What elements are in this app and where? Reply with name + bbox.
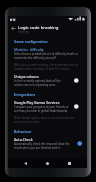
staticText: Compare your progress to your friends or…: [14, 105, 71, 112]
staticText: Settings: [18, 30, 29, 34]
staticText: Behaviour: [14, 129, 32, 134]
staticText: Google Play Games Services: [14, 100, 60, 105]
staticText: Note: Enabling this requires an active i…: [14, 116, 83, 123]
staticText: With your current settings, the estimate…: [14, 63, 83, 70]
button[interactable]: Recent apps: [65, 159, 74, 168]
staticText: In the currently opened deck all the col…: [14, 79, 71, 86]
staticText: Game configuration: [14, 39, 48, 44]
button[interactable]: Note: Enabling this requires an active i…: [8, 114, 87, 125]
button[interactable]: Back: [21, 159, 30, 168]
button[interactable]: Modules difficulty: [8, 45, 87, 61]
button[interactable]: Home: [43, 159, 52, 168]
staticText: Select from a predefined set of difficul…: [14, 52, 83, 59]
button[interactable]: Auto-Check switch: [73, 140, 83, 147]
staticText: Modules difficulty: [14, 47, 44, 52]
staticText: Logic code breaking: [18, 24, 59, 30]
staticText: Auto-Check: [14, 137, 33, 142]
button[interactable]: Navigate up: [9, 24, 18, 33]
button[interactable]: With your current settings, the estimate…: [8, 61, 87, 72]
button[interactable]: Google Play Games Services: [8, 98, 87, 114]
staticText: Integrations: [14, 92, 36, 97]
staticText: Automatically check the row and show the…: [14, 142, 71, 149]
staticText: Unique colours: [14, 74, 39, 79]
button[interactable]: Google Play Games Services switch: [73, 103, 83, 110]
button[interactable]: Unique colours switch: [73, 77, 83, 84]
button[interactable]: Unique colours: [8, 72, 87, 88]
button[interactable]: Auto-Check: [8, 135, 87, 151]
